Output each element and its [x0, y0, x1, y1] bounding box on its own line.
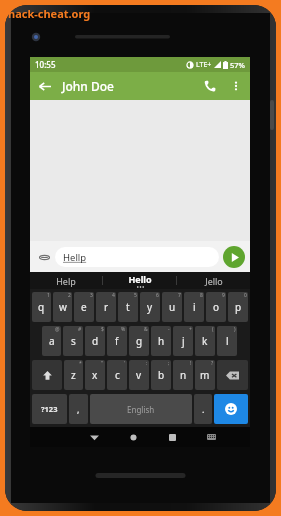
- staticText: i: [193, 300, 196, 314]
- staticText: 7: [178, 292, 181, 299]
- staticText: @: [55, 326, 60, 333]
- staticText: d: [92, 334, 99, 348]
- button[interactable]: ?123: [32, 394, 67, 424]
- button[interactable]: z: [64, 360, 83, 390]
- staticText: b: [158, 368, 165, 382]
- button[interactable]: h: [151, 326, 171, 356]
- button[interactable]: Back: [30, 72, 58, 100]
- staticText: Help: [56, 275, 76, 287]
- button[interactable]: Backspace: [217, 360, 248, 390]
- button[interactable]: English: [90, 394, 192, 424]
- button[interactable]: v: [129, 360, 149, 390]
- staticText: ": [101, 360, 104, 367]
- button[interactable]: Jello: [177, 272, 250, 289]
- staticText: *: [79, 360, 82, 367]
- staticText: m: [200, 368, 210, 382]
- staticText: u: [169, 300, 176, 314]
- button[interactable]: r: [96, 292, 116, 322]
- button[interactable]: More options: [224, 74, 248, 98]
- button[interactable]: p: [228, 292, 248, 322]
- button[interactable]: q: [32, 292, 51, 322]
- staticText: ;: [168, 360, 170, 367]
- button[interactable]: o: [206, 292, 226, 322]
- staticText: j: [182, 334, 185, 348]
- staticText: ?: [211, 360, 214, 367]
- button[interactable]: Back: [75, 427, 114, 447]
- staticText: y: [147, 300, 153, 314]
- button[interactable]: w: [53, 292, 72, 322]
- staticText: 5: [134, 292, 137, 299]
- button[interactable]: f: [107, 326, 127, 356]
- button[interactable]: g: [129, 326, 149, 356]
- button[interactable]: j: [173, 326, 193, 356]
- button[interactable]: x: [85, 360, 105, 390]
- staticText: t: [126, 300, 130, 314]
- button[interactable]: Send: [223, 246, 245, 268]
- staticText: 4: [112, 292, 115, 299]
- staticText: g: [136, 334, 143, 348]
- staticText: Jello: [205, 275, 223, 287]
- staticText: v: [136, 368, 142, 382]
- button[interactable]: i: [184, 292, 204, 322]
- staticText: 3: [90, 292, 93, 299]
- button[interactable]: d: [85, 326, 105, 356]
- button[interactable]: u: [162, 292, 182, 322]
- staticText: z: [71, 368, 76, 382]
- button[interactable]: m: [195, 360, 215, 390]
- button[interactable]: ,: [69, 394, 88, 424]
- button[interactable]: Switch keyboard: [192, 427, 231, 447]
- staticText: 10:55: [35, 59, 56, 70]
- button[interactable]: John Doe: [62, 78, 114, 94]
- staticText: h: [158, 334, 165, 348]
- staticText: %: [121, 326, 126, 333]
- button[interactable]: s: [63, 326, 83, 356]
- staticText: ,: [77, 403, 80, 415]
- button[interactable]: Hellp: [55, 247, 219, 267]
- button[interactable]: Recents: [153, 427, 192, 447]
- staticText: ': [124, 360, 126, 367]
- staticText: 6: [156, 292, 159, 299]
- button[interactable]: Emoji: [214, 394, 248, 424]
- staticText: ?123: [41, 404, 58, 414]
- staticText: o: [213, 300, 220, 314]
- staticText: $: [101, 326, 104, 333]
- staticText: w: [59, 300, 67, 314]
- button[interactable]: b: [151, 360, 171, 390]
- button[interactable]: c: [107, 360, 127, 390]
- staticText: Hello: [128, 273, 152, 285]
- button[interactable]: Help: [30, 272, 102, 289]
- staticText: .: [202, 403, 205, 415]
- staticText: English: [127, 404, 155, 415]
- button[interactable]: n: [173, 360, 193, 390]
- staticText: 0: [244, 292, 247, 299]
- button[interactable]: k: [195, 326, 215, 356]
- staticText: p: [235, 300, 242, 314]
- staticText: 2: [68, 292, 71, 299]
- staticText: #: [78, 326, 82, 333]
- staticText: +: [189, 326, 192, 333]
- staticText: e: [81, 300, 87, 314]
- staticText: ): [234, 326, 236, 333]
- staticText: n: [180, 368, 187, 382]
- staticText: -: [168, 326, 170, 333]
- staticText: x: [92, 368, 98, 382]
- staticText: q: [38, 300, 45, 314]
- staticText: c: [115, 368, 120, 382]
- staticText: hack-cheat.org: [8, 6, 91, 21]
- button[interactable]: Hello: [103, 272, 176, 289]
- staticText: r: [104, 300, 109, 314]
- button[interactable]: y: [140, 292, 160, 322]
- staticText: :: [146, 360, 148, 367]
- button[interactable]: Home: [114, 427, 153, 447]
- button[interactable]: t: [118, 292, 138, 322]
- staticText: 1: [47, 292, 50, 299]
- button[interactable]: e: [74, 292, 94, 322]
- button[interactable]: Call: [196, 72, 224, 100]
- button[interactable]: a: [42, 326, 61, 356]
- button[interactable]: l: [217, 326, 237, 356]
- staticText: a: [49, 334, 55, 348]
- staticText: Hellp: [63, 251, 87, 264]
- button[interactable]: Attach: [35, 248, 53, 266]
- button[interactable]: .: [194, 394, 212, 424]
- button[interactable]: Shift: [32, 360, 62, 390]
